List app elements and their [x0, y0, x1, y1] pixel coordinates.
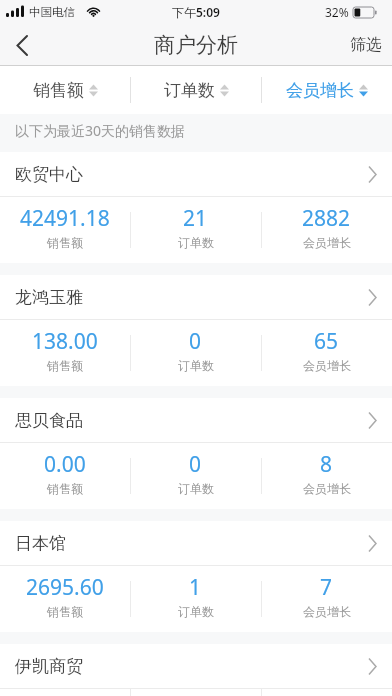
staticText: 会员增长 — [303, 235, 351, 250]
staticText: 销售额 — [47, 358, 83, 373]
staticText: 0.00 — [44, 450, 86, 479]
button[interactable]: 伊凯商贸 — [0, 644, 392, 688]
button[interactable]: 0.00 — [0, 443, 130, 509]
staticText: 伊凯商贸 — [15, 656, 83, 677]
staticText: 筛选 — [350, 35, 382, 55]
button[interactable]: 42491.18 — [0, 197, 130, 263]
staticText: 销售额 — [47, 604, 83, 619]
staticText: 以下为最近30天的销售数据 — [15, 121, 186, 140]
button[interactable]: 7 — [261, 566, 392, 632]
button[interactable]: 1 — [130, 566, 261, 632]
button[interactable]: 0 — [130, 320, 261, 386]
button[interactable]: 2882 — [261, 197, 392, 263]
staticText: 思贝食品 — [15, 410, 83, 431]
staticText: 2695.60 — [26, 573, 104, 602]
staticText: 中国电信 — [29, 5, 75, 19]
staticText: 订单数 — [178, 358, 214, 373]
button[interactable]: 龙鸿玉雅 — [0, 275, 392, 319]
button[interactable]: 欧贸中心 — [0, 152, 392, 196]
button[interactable]: 思贝食品 — [0, 398, 392, 442]
staticText: 龙鸿玉雅 — [15, 287, 83, 308]
staticText: 销售额 — [33, 80, 84, 101]
button[interactable]: 筛选 — [350, 35, 392, 55]
button[interactable]: 138.00 — [0, 320, 130, 386]
staticText: 欧贸中心 — [15, 164, 83, 185]
button[interactable]: 日本馆 — [0, 521, 392, 565]
button[interactable]: 2695.60 — [0, 566, 130, 632]
staticText: 138.00 — [32, 327, 98, 356]
staticText: 日本馆 — [15, 533, 66, 554]
staticText: 2882 — [302, 204, 351, 233]
button[interactable] — [6, 30, 36, 60]
staticText: 订单数 — [178, 235, 214, 250]
staticText: 32% — [325, 4, 349, 20]
staticText: 订单数 — [178, 604, 214, 619]
staticText: 8 — [320, 450, 333, 479]
button[interactable]: 21 — [130, 197, 261, 263]
staticText: 销售额 — [47, 235, 83, 250]
staticText: 42491.18 — [20, 204, 110, 233]
button[interactable]: 8 — [261, 443, 392, 509]
staticText: 65 — [314, 327, 339, 356]
button[interactable]: 会员增长 — [262, 66, 392, 114]
staticText: 0 — [189, 450, 202, 479]
staticText: 0 — [189, 327, 202, 356]
staticText: 下午5:09 — [172, 4, 220, 20]
button[interactable]: 销售额 — [0, 66, 130, 114]
button[interactable]: 0 — [130, 443, 261, 509]
staticText: 订单数 — [178, 481, 214, 496]
staticText: 21 — [183, 204, 208, 233]
staticText: 7 — [320, 573, 333, 602]
button[interactable]: 订单数 — [131, 66, 261, 114]
staticText: 会员增长 — [286, 80, 354, 101]
staticText: 1 — [189, 573, 202, 602]
staticText: 会员增长 — [303, 604, 351, 619]
staticText: 商户分析 — [154, 32, 238, 58]
staticText: 会员增长 — [303, 481, 351, 496]
staticText: 订单数 — [164, 80, 215, 101]
button[interactable]: 65 — [261, 320, 392, 386]
staticText: 会员增长 — [303, 358, 351, 373]
staticText: 销售额 — [47, 481, 83, 496]
